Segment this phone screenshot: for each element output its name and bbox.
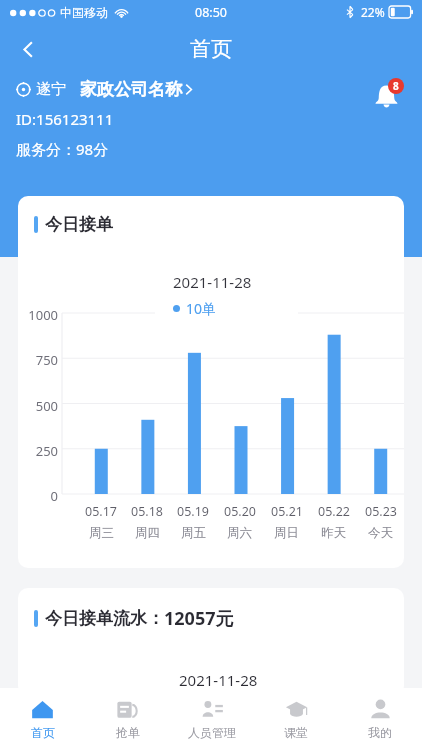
staticText: 抢单 bbox=[116, 725, 140, 740]
staticText: 2021-11-28 bbox=[173, 272, 252, 292]
staticText: 22% bbox=[361, 4, 385, 20]
staticText: 05.20 bbox=[224, 503, 256, 520]
staticText: 人员管理 bbox=[188, 725, 236, 740]
staticText: 周四 bbox=[135, 525, 160, 541]
staticText: 250 bbox=[20, 442, 58, 460]
staticText: 周日 bbox=[274, 525, 299, 541]
staticText: 2021-11-28 bbox=[179, 670, 258, 690]
staticText: 1000 bbox=[20, 306, 58, 324]
staticText: 课堂 bbox=[284, 725, 308, 740]
staticText: 10单 bbox=[186, 299, 217, 318]
staticText: 05.18 bbox=[131, 503, 163, 520]
staticText: 周三 bbox=[89, 525, 114, 541]
staticText: 服务分：98分 bbox=[16, 139, 109, 159]
staticText: ID:156123111 bbox=[16, 109, 114, 129]
staticText: 今天 bbox=[368, 525, 393, 541]
staticText: 05.19 bbox=[177, 503, 209, 520]
staticText: 今日接单流水： bbox=[45, 608, 164, 629]
button[interactable]: Back bbox=[6, 27, 50, 71]
staticText: 周六 bbox=[227, 525, 252, 541]
button[interactable]: 人员管理 bbox=[170, 688, 254, 750]
staticText: 我的 bbox=[368, 725, 392, 740]
staticText: 今日接单 bbox=[45, 214, 113, 235]
staticText: 家政公司名称 bbox=[80, 79, 182, 100]
staticText: 05.21 bbox=[271, 503, 303, 520]
button[interactable]: 课堂 bbox=[254, 688, 338, 750]
staticText: 8 bbox=[393, 79, 399, 93]
staticText: 遂宁 bbox=[36, 80, 66, 99]
staticText: 500 bbox=[20, 397, 58, 415]
staticText: 首页 bbox=[31, 725, 55, 740]
staticText: 05.23 bbox=[365, 503, 397, 520]
staticText: 05.22 bbox=[318, 503, 350, 520]
staticText: 05.17 bbox=[85, 503, 117, 520]
staticText: 首页 bbox=[190, 36, 232, 62]
staticText: 08:50 bbox=[195, 4, 227, 21]
button[interactable]: 首页 bbox=[0, 688, 85, 750]
button[interactable]: Notifications bbox=[366, 76, 406, 116]
button[interactable]: 我的 bbox=[338, 688, 422, 750]
staticText: 周五 bbox=[181, 525, 206, 541]
staticText: 12057元 bbox=[164, 606, 234, 631]
button[interactable]: 抢单 bbox=[85, 688, 170, 750]
staticText: 昨天 bbox=[321, 525, 346, 541]
staticText: 中国移动 bbox=[60, 5, 108, 20]
staticText: 0 bbox=[20, 487, 58, 505]
staticText: 750 bbox=[20, 351, 58, 369]
button[interactable]: 遂宁 bbox=[16, 79, 193, 100]
